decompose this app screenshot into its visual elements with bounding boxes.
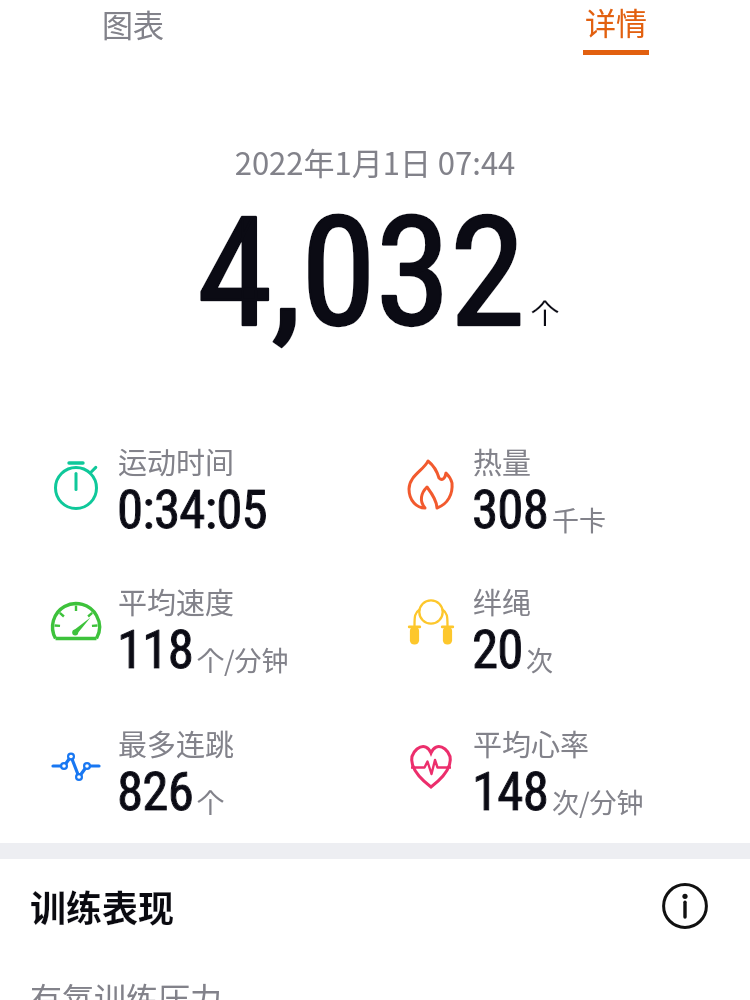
staticText: 826	[117, 761, 194, 823]
button[interactable]: 绊绳	[403, 579, 733, 685]
button[interactable]: 平均速度	[48, 579, 378, 685]
staticText: 20	[472, 619, 523, 681]
button[interactable]: 训练表现	[30, 880, 175, 930]
staticText: 118	[117, 619, 194, 681]
staticText: 热量	[473, 440, 532, 482]
button[interactable]: 图表	[73, 0, 193, 62]
staticText: 个	[531, 292, 560, 333]
staticText: 平均速度	[118, 580, 235, 622]
staticText: 4,032	[197, 183, 525, 362]
staticText: 图表	[102, 1, 164, 46]
staticText: 详情	[585, 0, 647, 44]
button[interactable]: 详情	[556, 0, 676, 62]
staticText: 次	[526, 640, 553, 679]
staticText: 308	[472, 479, 549, 541]
staticText: 0:34:05	[117, 479, 267, 541]
button[interactable]: 最多连跳	[48, 721, 378, 827]
staticText: 148	[472, 761, 549, 823]
button[interactable]: 平均心率	[403, 721, 733, 827]
staticText: 个/分钟	[197, 640, 289, 679]
staticText: 运动时间	[118, 440, 235, 482]
staticText: 有氧训练压力	[30, 974, 223, 1000]
staticText: 次/分钟	[552, 782, 644, 821]
staticText: 个	[197, 782, 224, 821]
button[interactable]: 运动时间	[48, 439, 378, 545]
button[interactable]: 热量	[403, 439, 733, 545]
staticText: 平均心率	[473, 722, 590, 764]
staticText: 千卡	[552, 500, 606, 539]
button[interactable]: Info	[658, 879, 712, 933]
staticText: 308	[472, 479, 549, 541]
staticText: 118	[117, 619, 194, 681]
staticText: 训练表现	[30, 880, 175, 930]
staticText: 20	[472, 619, 523, 681]
staticText: 最多连跳	[118, 722, 235, 764]
staticText: 0:34:05	[117, 479, 267, 541]
staticText: 2022年1月1日 07:44	[0, 139, 750, 184]
staticText: 148	[472, 761, 549, 823]
staticText: 绊绳	[473, 580, 532, 622]
staticText: 826	[117, 761, 194, 823]
staticText: 4,032	[197, 183, 525, 362]
